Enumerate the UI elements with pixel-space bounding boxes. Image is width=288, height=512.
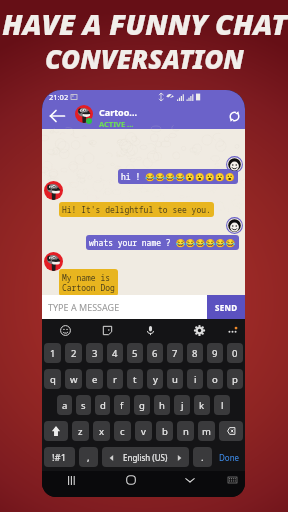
button[interactable]: Settings <box>188 319 210 341</box>
staticText: English (US) <box>123 452 168 463</box>
button[interactable]: u <box>167 369 183 389</box>
button[interactable]: m <box>198 421 215 441</box>
button[interactable]: . <box>193 447 212 467</box>
button[interactable]: z <box>72 421 89 441</box>
staticText: z <box>78 425 83 438</box>
staticText: !#1 <box>52 451 67 464</box>
staticText: 1 <box>50 347 56 360</box>
button[interactable]: s <box>76 395 91 415</box>
staticText: u <box>172 373 178 386</box>
button[interactable]: Backspace <box>219 421 243 441</box>
staticText: y <box>153 373 158 386</box>
button[interactable]: r <box>107 369 123 389</box>
button[interactable]: More options <box>221 319 243 341</box>
button[interactable]: Recents <box>42 471 101 489</box>
button[interactable]: 6 <box>147 343 163 363</box>
staticText: x <box>99 425 105 438</box>
button[interactable]: t <box>127 369 143 389</box>
button[interactable]: e <box>86 369 103 389</box>
button[interactable]: Back <box>47 106 67 126</box>
staticText: . <box>201 451 204 464</box>
button[interactable]: 9 <box>207 343 223 363</box>
staticText: SEND <box>215 302 238 313</box>
staticText: hi ! 😂😂😂😂😮😮😮😮😮 <box>121 171 235 182</box>
button[interactable]: h <box>154 395 170 415</box>
staticText: t <box>133 373 137 386</box>
staticText: HAVE A FUNNY CHAT <box>2 5 287 44</box>
staticText: CONVERSATION <box>45 41 244 76</box>
staticText: j <box>181 399 184 412</box>
button[interactable]: Home <box>101 471 160 489</box>
staticText: 4 <box>112 347 118 360</box>
staticText: k <box>199 399 205 412</box>
button[interactable]: 1 <box>44 343 61 363</box>
staticText: p <box>232 373 238 386</box>
button[interactable]: a <box>57 395 72 415</box>
button[interactable]: Hide keyboard <box>160 471 219 489</box>
button[interactable]: n <box>177 421 194 441</box>
button[interactable]: q <box>44 369 61 389</box>
button[interactable]: i <box>187 369 203 389</box>
button[interactable]: SEND <box>207 295 245 319</box>
button[interactable]: c <box>114 421 131 441</box>
staticText: l <box>221 399 224 412</box>
staticText: g <box>139 399 145 412</box>
staticText: 3 <box>92 347 98 360</box>
button[interactable]: b <box>156 421 173 441</box>
button[interactable]: j <box>174 395 190 415</box>
button[interactable]: x <box>93 421 110 441</box>
staticText: Cartoo... <box>99 106 137 118</box>
button[interactable]: p <box>227 369 243 389</box>
button[interactable]: f <box>114 395 130 415</box>
button[interactable]: 7 <box>167 343 183 363</box>
staticText: b <box>162 425 168 438</box>
button[interactable]: Voice input <box>139 319 161 341</box>
button[interactable]: Emoji <box>54 319 76 341</box>
button[interactable]: 2 <box>65 343 82 363</box>
staticText: s <box>81 399 86 412</box>
staticText: 9 <box>212 347 218 360</box>
button[interactable]: !#1 <box>44 447 75 467</box>
button[interactable]: g <box>134 395 150 415</box>
button[interactable]: 8 <box>187 343 203 363</box>
button[interactable]: l <box>214 395 230 415</box>
staticText: i <box>194 373 197 386</box>
staticText: e <box>92 373 98 386</box>
staticText: whats your name ? 😂😂😂😂😂😂 <box>89 237 236 248</box>
staticText: m <box>202 425 211 438</box>
button[interactable]: 4 <box>107 343 123 363</box>
button[interactable]: 3 <box>86 343 103 363</box>
button[interactable]: 0 <box>227 343 243 363</box>
staticText: My name is Cartoon Dog <box>62 272 115 293</box>
staticText: w <box>70 373 78 386</box>
staticText: o <box>212 373 218 386</box>
staticText: d <box>100 399 106 412</box>
button[interactable]: Done <box>216 447 243 467</box>
staticText: h <box>159 399 165 412</box>
button[interactable]: k <box>194 395 210 415</box>
staticText: 2 <box>71 347 77 360</box>
staticText: v <box>141 425 146 438</box>
staticText: TYPE A MESSAGE <box>48 301 120 313</box>
button[interactable]: Refresh <box>224 106 244 126</box>
staticText: Hi! It's delightful to see you. <box>62 204 211 215</box>
button[interactable]: Stickers <box>96 319 118 341</box>
staticText: 5 <box>132 347 138 360</box>
staticText: f <box>120 399 124 412</box>
staticText: r <box>113 373 117 386</box>
staticText: 6 <box>152 347 158 360</box>
staticText: n <box>183 425 189 438</box>
staticText: c <box>120 425 125 438</box>
staticText: 21:02 <box>49 92 69 102</box>
staticText: , <box>87 451 90 464</box>
button[interactable]: v <box>135 421 152 441</box>
button[interactable]: o <box>207 369 223 389</box>
staticText: 8 <box>192 347 198 360</box>
button[interactable]: 5 <box>127 343 143 363</box>
button[interactable]: English (US) <box>102 447 189 467</box>
button[interactable]: w <box>65 369 82 389</box>
button[interactable]: d <box>95 395 110 415</box>
button[interactable]: Shift <box>44 421 68 441</box>
button[interactable]: , <box>79 447 98 467</box>
button[interactable]: y <box>147 369 163 389</box>
